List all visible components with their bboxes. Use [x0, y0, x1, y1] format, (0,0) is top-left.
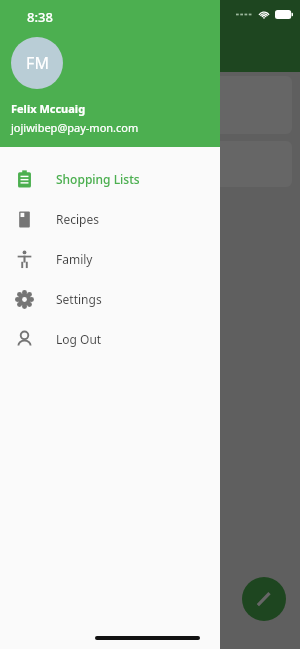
staticText: Log Out [56, 331, 102, 347]
button[interactable] [8, 141, 292, 187]
button[interactable]: Create new list [242, 577, 286, 621]
staticText: Shopping Lists [56, 171, 140, 187]
staticText: Settings [56, 291, 102, 307]
staticText: jojiwibep@pay-mon.com [11, 120, 139, 135]
button[interactable]: Family [0, 239, 220, 279]
button[interactable] [8, 76, 292, 134]
staticText: Recipes [56, 211, 99, 227]
button[interactable]: Recipes [0, 199, 220, 239]
button[interactable]: Shopping Lists [0, 159, 220, 199]
staticText: FM [26, 52, 49, 74]
button[interactable] [0, 0, 300, 649]
button[interactable]: Settings [0, 279, 220, 319]
staticText: Family [56, 251, 93, 267]
staticText: 8:38 [27, 8, 53, 26]
staticText: Felix Mccuaig [11, 101, 86, 116]
button[interactable]: Log Out [0, 319, 220, 359]
